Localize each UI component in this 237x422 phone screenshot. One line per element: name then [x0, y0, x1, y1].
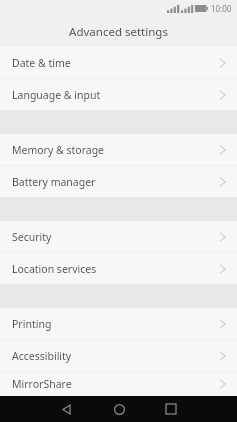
- button[interactable]: Battery manager: [0, 166, 237, 197]
- staticText: Memory & storage: [12, 143, 218, 157]
- button[interactable]: Location services: [0, 253, 237, 284]
- staticText: Accessibility: [12, 349, 218, 363]
- staticText: 10:00: [211, 3, 232, 14]
- button[interactable]: Memory & storage: [0, 134, 237, 165]
- staticText: Date & time: [12, 56, 218, 70]
- button[interactable]: MirrorShare: [0, 372, 237, 396]
- button[interactable]: Home: [103, 396, 135, 422]
- button[interactable]: Recent apps: [155, 396, 187, 422]
- staticText: Language & input: [12, 88, 218, 102]
- button[interactable]: Back: [50, 396, 82, 422]
- staticText: MirrorShare: [12, 377, 218, 391]
- staticText: Advanced settings: [69, 24, 168, 40]
- staticText: Security: [12, 230, 218, 244]
- staticText: Printing: [12, 317, 218, 331]
- staticText: Location services: [12, 262, 218, 276]
- staticText: Battery manager: [12, 175, 218, 189]
- button[interactable]: Language & input: [0, 79, 237, 110]
- button[interactable]: Accessibility: [0, 340, 237, 371]
- button[interactable]: Date & time: [0, 47, 237, 78]
- button[interactable]: Security: [0, 221, 237, 252]
- button[interactable]: Printing: [0, 308, 237, 339]
